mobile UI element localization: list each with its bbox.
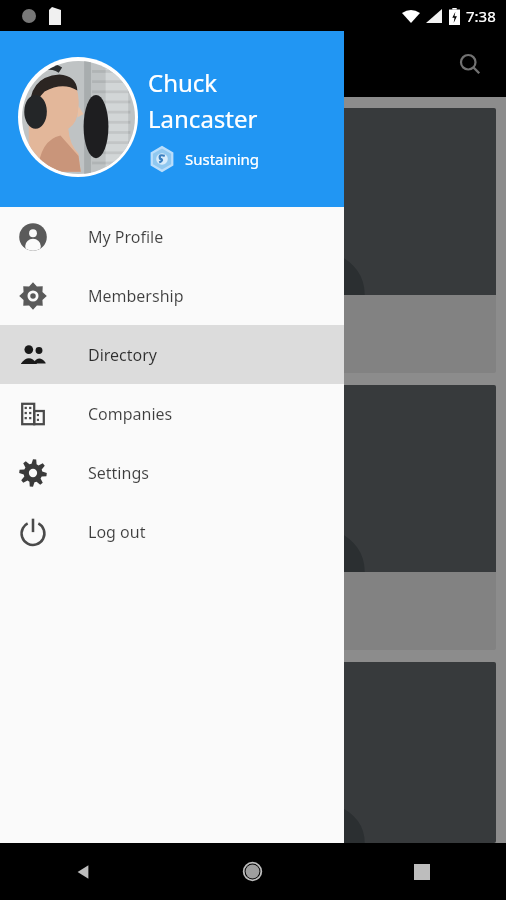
button[interactable]: Settings	[0, 443, 344, 502]
button[interactable]: Recent apps	[337, 843, 506, 900]
staticText: Membership	[88, 285, 184, 307]
staticText: My Profile	[88, 226, 164, 248]
button[interactable]	[10, 108, 496, 373]
staticText: Companies	[88, 403, 173, 425]
button[interactable]: My Profile	[0, 207, 344, 266]
staticText: Lancaster	[148, 102, 258, 135]
button[interactable]: Search	[446, 40, 494, 88]
staticText: 7:38	[466, 6, 496, 26]
button[interactable]: Log out	[0, 502, 344, 561]
button[interactable]	[10, 385, 496, 650]
button[interactable]: Home	[168, 843, 337, 900]
button[interactable]: Profile photo	[18, 57, 138, 177]
staticText: Directory	[88, 344, 158, 366]
staticText: Chuck	[148, 66, 218, 99]
button[interactable]: Companies	[0, 384, 344, 443]
button[interactable]: Back	[0, 843, 168, 900]
staticText: Log out	[88, 521, 146, 543]
button[interactable]	[10, 662, 496, 843]
button[interactable]: Directory	[0, 325, 344, 384]
staticText: Sustaining	[185, 149, 260, 169]
button[interactable]: Membership	[0, 266, 344, 325]
staticText: Settings	[88, 462, 149, 484]
